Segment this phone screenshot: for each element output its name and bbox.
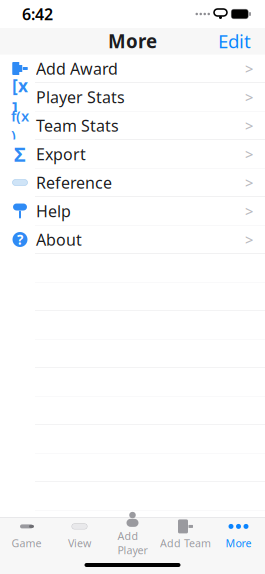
staticText: View (68, 536, 91, 550)
staticText: > (245, 116, 253, 135)
button[interactable]: ? (0, 225, 265, 254)
button[interactable]: Add Team (159, 518, 212, 550)
staticText: More (108, 29, 157, 53)
staticText: > (245, 201, 253, 221)
button[interactable]: Help (0, 197, 265, 225)
staticText: > (245, 87, 253, 107)
staticText: Add Player (117, 529, 147, 557)
staticText: > (245, 230, 253, 249)
staticText: 6:42 (22, 3, 53, 25)
button[interactable]: Add Player (106, 518, 159, 550)
staticText: [x] (12, 74, 28, 120)
staticText: Reference (36, 172, 112, 193)
button[interactable]: Game (0, 518, 53, 550)
staticText: Player Stats (36, 86, 125, 108)
staticText: f(x) (11, 106, 29, 145)
staticText: Add Team (160, 536, 211, 550)
staticText: > (245, 59, 253, 78)
staticText: > (245, 144, 253, 164)
button[interactable]: Edit (212, 24, 257, 58)
staticText: Team Stats (36, 115, 119, 136)
button[interactable]: [x] (0, 83, 265, 111)
button[interactable]: Reference (0, 168, 265, 197)
staticText: Add Award (36, 58, 118, 79)
staticText: Export (36, 143, 86, 165)
button[interactable]: Add Award (0, 54, 265, 83)
staticText: Help (36, 200, 71, 222)
staticText: > (245, 173, 253, 192)
button[interactable]: View (53, 518, 106, 550)
button[interactable]: f(x) (0, 111, 265, 140)
staticText: ? (17, 231, 23, 248)
staticText: Game (11, 536, 41, 550)
button[interactable]: Σ (0, 140, 265, 168)
staticText: Σ (14, 141, 26, 167)
button[interactable]: More (212, 518, 265, 550)
staticText: About (36, 229, 82, 250)
staticText: Edit (218, 29, 251, 53)
staticText: More (225, 536, 251, 550)
